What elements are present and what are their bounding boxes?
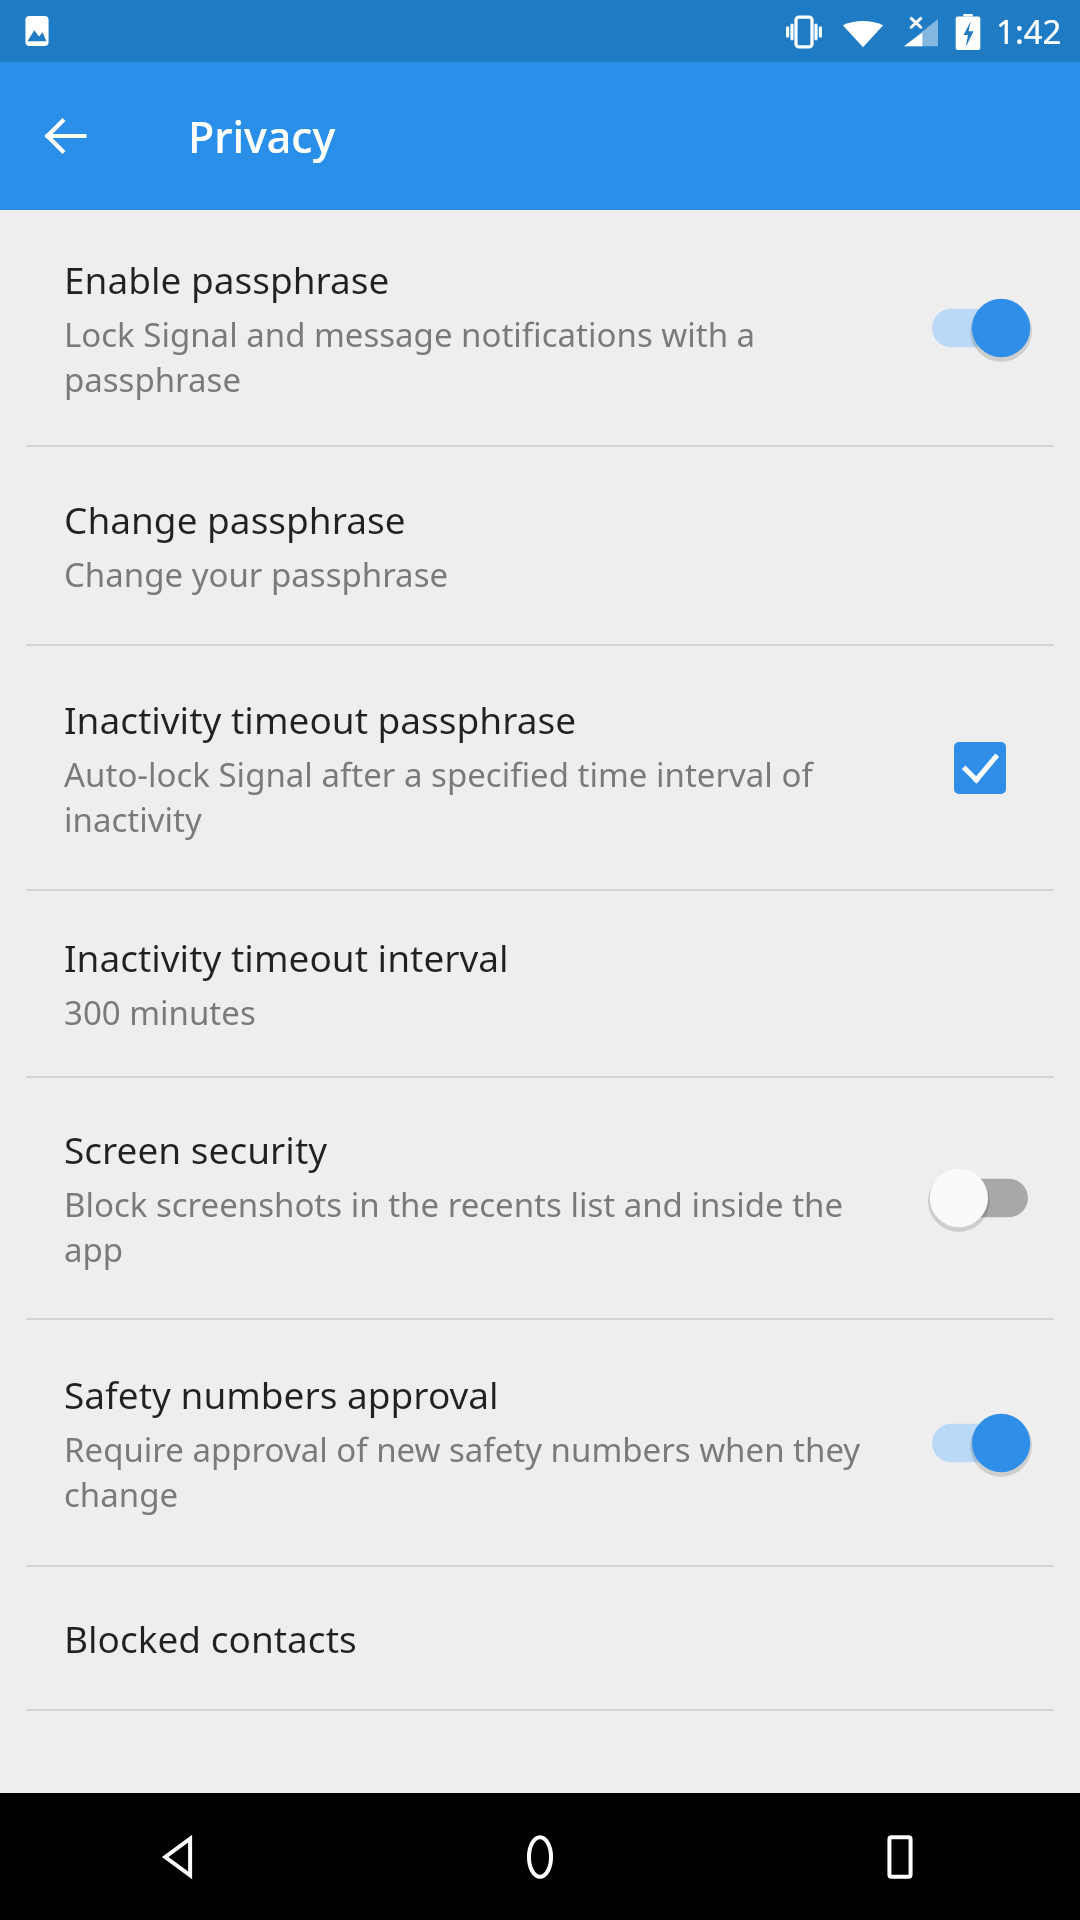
button[interactable]: Recent apps: [720, 1793, 1080, 1920]
button[interactable]: Inactivity timeout passphrase: [920, 713, 1040, 823]
button[interactable]: Screen security: [0, 1078, 1080, 1318]
staticText: Block screenshots in the recents list an…: [64, 1182, 892, 1272]
button[interactable]: Inactivity timeout passphrase: [0, 646, 1080, 889]
button[interactable]: Home: [360, 1793, 720, 1920]
staticText: Auto-lock Signal after a specified time …: [64, 752, 892, 842]
staticText: 1:42: [996, 9, 1062, 54]
staticText: 300 minutes: [64, 990, 256, 1035]
button[interactable]: Safety numbers approval: [0, 1320, 1080, 1565]
staticText: Change passphrase: [64, 494, 406, 544]
staticText: Inactivity timeout passphrase: [64, 694, 577, 744]
staticText: Safety numbers approval: [64, 1369, 499, 1419]
button[interactable]: Enable passphrase: [0, 210, 1080, 445]
button[interactable]: Change passphrase: [0, 447, 1080, 644]
button[interactable]: Inactivity timeout interval: [0, 891, 1080, 1076]
button[interactable]: Enable passphrase: [920, 273, 1040, 383]
staticText: Blocked contacts: [64, 1613, 357, 1663]
staticText: Screen security: [64, 1124, 328, 1174]
button[interactable]: Screen security: [920, 1143, 1040, 1253]
staticText: Privacy: [188, 107, 336, 166]
button[interactable]: Safety numbers approval: [920, 1388, 1040, 1498]
staticText: Require approval of new safety numbers w…: [64, 1427, 892, 1517]
staticText: Lock Signal and message notifications wi…: [64, 312, 892, 402]
staticText: Change your passphrase: [64, 552, 449, 597]
button[interactable]: Navigate up: [28, 98, 104, 174]
button[interactable]: Back: [0, 1793, 360, 1920]
staticText: Inactivity timeout interval: [64, 932, 509, 982]
staticText: Enable passphrase: [64, 254, 390, 304]
button[interactable]: Blocked contacts: [0, 1567, 1080, 1709]
